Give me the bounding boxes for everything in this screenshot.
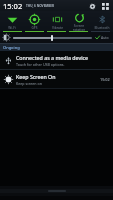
button[interactable]: Keep Screen On bbox=[0, 70, 113, 88]
staticText: 15:02 bbox=[3, 1, 23, 11]
button[interactable]: Brightness slider bbox=[13, 32, 92, 43]
button[interactable]: Close notification panel bbox=[0, 186, 113, 196]
staticText: Wi-Fi bbox=[8, 26, 16, 30]
button[interactable]: Connected as a media device bbox=[0, 51, 113, 69]
staticText: Touch for other USB options. bbox=[16, 62, 65, 67]
button[interactable]: Vibrate bbox=[46, 11, 68, 32]
button[interactable]: Quick settings bbox=[100, 1, 110, 11]
staticText: Connected as a media device bbox=[16, 54, 89, 61]
staticText: Keep Screen On bbox=[16, 73, 56, 80]
button[interactable]: Screen rotation bbox=[68, 11, 90, 32]
staticText: Keep screen on bbox=[16, 81, 42, 86]
button[interactable]: Wi-Fi bbox=[1, 11, 23, 32]
button[interactable]: Settings bbox=[87, 1, 97, 11]
staticText: Vibrate bbox=[52, 26, 63, 30]
staticText: Ongoing bbox=[3, 45, 20, 50]
button[interactable]: Auto bbox=[94, 35, 110, 40]
staticText: 15:02 bbox=[100, 77, 110, 82]
staticText: Screen rotation bbox=[68, 24, 90, 32]
button[interactable]: GPS bbox=[23, 11, 45, 32]
staticText: Auto bbox=[101, 35, 109, 40]
staticText: Bluetooth bbox=[94, 26, 110, 30]
button[interactable]: Brightness bbox=[3, 34, 10, 41]
staticText: THU, 6 NOVEMBER bbox=[26, 4, 55, 8]
staticText: GPS bbox=[31, 26, 38, 30]
button[interactable]: Bluetooth bbox=[91, 11, 113, 32]
